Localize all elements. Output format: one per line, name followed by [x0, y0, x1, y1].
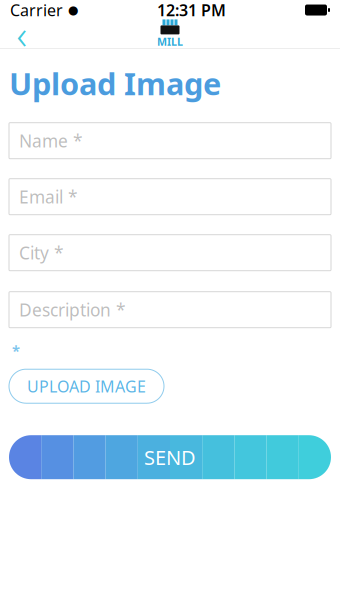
button[interactable]: SEND: [9, 435, 331, 479]
staticText: Name *: [19, 129, 83, 152]
staticText: Email *: [19, 185, 78, 208]
staticText: 12:31 PM: [157, 0, 226, 21]
button[interactable]: Back: [0, 20, 44, 48]
staticText: SEND: [144, 444, 196, 470]
button[interactable]: UPLOAD IMAGE: [9, 369, 164, 403]
staticText: Carrier: [10, 0, 63, 21]
staticText: City *: [19, 241, 64, 264]
staticText: Description *: [19, 298, 126, 321]
staticText: *: [12, 341, 20, 360]
staticText: MILL: [157, 34, 183, 49]
staticText: Upload Image: [9, 63, 221, 104]
staticText: ‹: [16, 7, 27, 60]
staticText: UPLOAD IMAGE: [27, 376, 146, 397]
staticText: ●: [68, 3, 78, 17]
